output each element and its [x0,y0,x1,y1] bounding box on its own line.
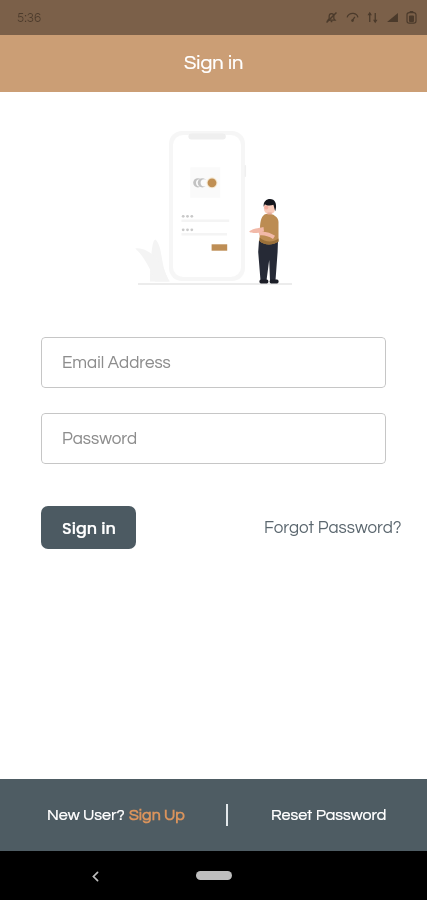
button[interactable]: Reset Password [227,779,427,851]
button[interactable]: Password [41,413,386,464]
staticText: Password [62,430,138,448]
button[interactable]: Email Address [41,337,386,388]
staticText: New User? [47,807,129,823]
staticText: Email Address [62,354,171,372]
staticText: Sign in [184,53,244,74]
button[interactable]: Home [196,871,232,880]
button[interactable]: Forgot Password? [264,511,402,545]
staticText: Sign in [62,517,116,539]
staticText: Sign Up [129,807,185,823]
button[interactable]: Sign in [41,506,136,549]
staticText: 5:36 [17,11,42,24]
staticText: Reset Password [271,807,387,823]
button[interactable]: Back [82,863,108,889]
staticText: Forgot Password? [264,519,402,537]
button[interactable]: New User? [0,779,226,851]
